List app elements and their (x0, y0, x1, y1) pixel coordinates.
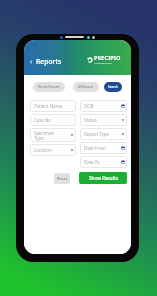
button[interactable]: Date To (80, 156, 127, 168)
staticText: Patient Name (34, 103, 63, 109)
staticText: All Reports (78, 85, 94, 89)
button[interactable]: Report Type (80, 128, 127, 140)
staticText: Search (108, 85, 118, 89)
other: Open Location dropdown (70, 148, 74, 152)
button[interactable]: Case No (30, 114, 76, 126)
button[interactable]: Recent Reports (33, 82, 65, 92)
staticText: Show Results (89, 175, 118, 181)
button[interactable]: Show Results (79, 172, 127, 184)
other: Back (28, 59, 34, 65)
staticText: Date From (84, 145, 106, 151)
button[interactable]: Reset (54, 173, 70, 184)
staticText: Case No (34, 117, 51, 123)
other: Open Specimen Type dropdown (70, 133, 74, 137)
other: Pick Date To date (121, 160, 125, 164)
staticText: Recent Reports (38, 85, 60, 89)
other: Pick Date From date (121, 146, 125, 150)
button[interactable]: All Reports (73, 82, 99, 92)
button[interactable]: Location (30, 144, 76, 156)
staticText: Date To (84, 159, 100, 165)
staticText: Reset (57, 176, 68, 181)
other: Pick DOB date (121, 104, 125, 108)
button[interactable]: Search (104, 82, 122, 92)
button[interactable]: Patient Name (30, 100, 76, 112)
button[interactable]: Date From (80, 142, 127, 154)
button[interactable]: Status (80, 114, 127, 126)
staticText: Specimen Type (34, 130, 55, 141)
staticText: DOB (84, 103, 94, 109)
staticText: DIAGNOSTICS (94, 62, 113, 65)
other: Open Report Type dropdown (121, 132, 125, 136)
staticText: Status (84, 117, 97, 123)
staticText: PRECIPIO (94, 54, 121, 62)
button[interactable]: Specimen Type (30, 128, 76, 142)
staticText: Report Type (84, 131, 109, 137)
button[interactable]: DOB (80, 100, 127, 112)
other: Open Status dropdown (121, 118, 125, 122)
button[interactable]: Back (27, 57, 63, 66)
staticText: Reports (36, 57, 62, 66)
staticText: Location (34, 147, 52, 153)
